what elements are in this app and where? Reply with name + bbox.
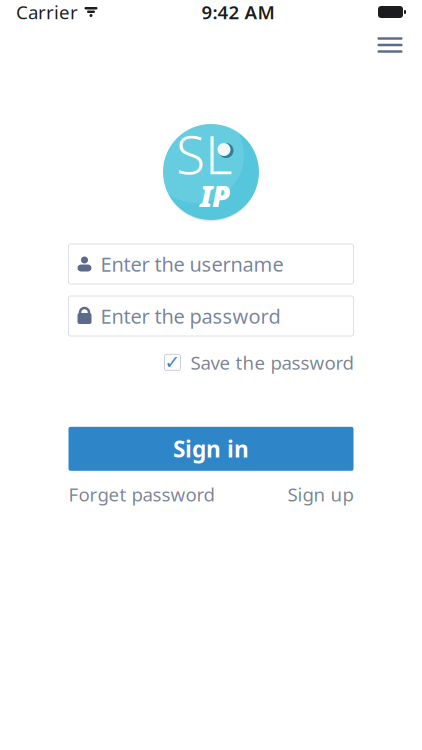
staticText: Enter the password — [100, 303, 280, 329]
staticText: SL — [176, 118, 232, 189]
button[interactable]: Enter the username — [68, 244, 353, 284]
staticText: Forget password — [68, 482, 214, 507]
staticText: Enter the username — [100, 251, 283, 277]
staticText: Carrier — [16, 0, 78, 24]
staticText: 9:42 AM — [201, 0, 274, 24]
button[interactable]: Enter the password — [68, 296, 353, 336]
button[interactable]: Menu — [370, 28, 410, 62]
button[interactable]: Sign in — [68, 427, 353, 471]
staticText: Save the password — [190, 350, 353, 375]
staticText: Sign in — [173, 434, 249, 464]
staticText: Sign up — [287, 482, 353, 507]
staticText: ✓ — [164, 352, 180, 373]
staticText: IP — [200, 176, 230, 215]
button[interactable]: ✓ — [164, 346, 353, 379]
button[interactable]: Sign up — [287, 477, 353, 512]
button[interactable]: Forget password — [68, 477, 214, 512]
